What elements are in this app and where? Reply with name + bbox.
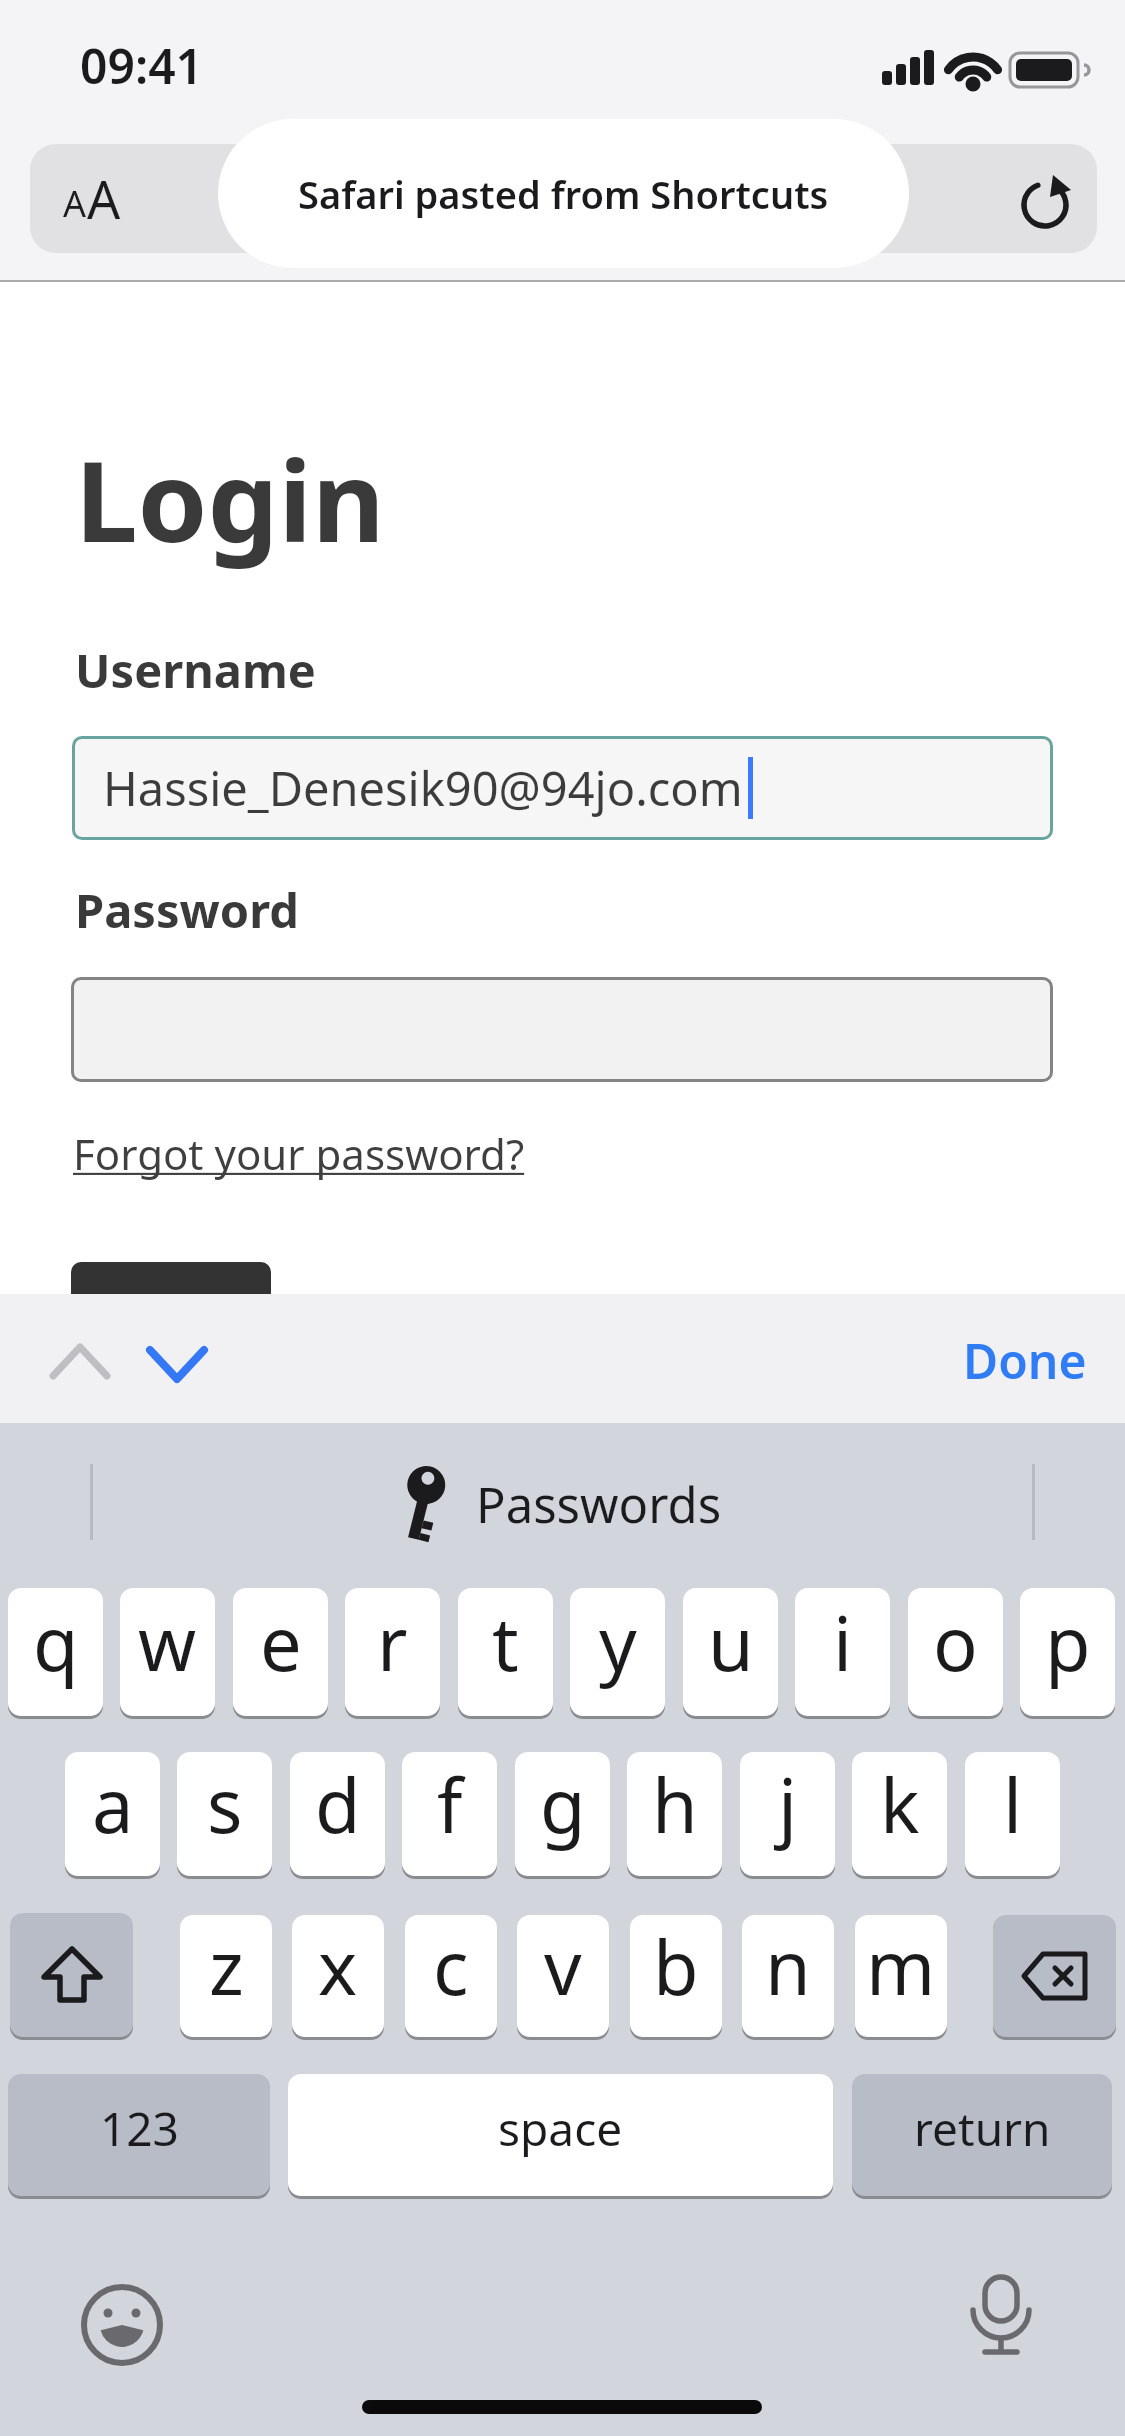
button[interactable]: h xyxy=(627,1752,722,1876)
staticText: Passwords xyxy=(476,1471,722,1538)
button[interactable]: m xyxy=(855,1915,947,2037)
staticText: j xyxy=(778,1754,798,1855)
staticText: Username xyxy=(75,638,316,702)
button[interactable]: n xyxy=(742,1915,834,2037)
staticText: u xyxy=(708,1592,754,1693)
button[interactable]: Forgot your password? xyxy=(73,1125,525,1182)
button[interactable]: s xyxy=(177,1752,272,1876)
button[interactable]: r xyxy=(345,1588,440,1716)
button[interactable]: o xyxy=(908,1588,1003,1716)
staticText: t xyxy=(492,1592,519,1693)
button[interactable]: Hassie_Denesik90@94jo.com xyxy=(72,736,1053,840)
staticText: w xyxy=(138,1592,197,1693)
staticText: Password xyxy=(75,878,299,942)
button[interactable]: e xyxy=(233,1588,328,1716)
button[interactable] xyxy=(966,2274,1036,2358)
button[interactable]: Safari pasted from Shortcuts xyxy=(218,119,909,268)
button[interactable]: d xyxy=(290,1752,385,1876)
staticText: f xyxy=(437,1754,463,1855)
staticText: z xyxy=(209,1916,244,2017)
button[interactable] xyxy=(10,1913,133,2037)
staticText: p xyxy=(1045,1592,1091,1693)
staticText: g xyxy=(540,1754,586,1855)
staticText: e xyxy=(260,1592,302,1693)
button[interactable] xyxy=(1019,179,1071,231)
button[interactable]: x xyxy=(292,1915,384,2037)
staticText: x xyxy=(318,1916,358,2017)
staticText: r xyxy=(377,1592,408,1693)
staticText: k xyxy=(880,1754,920,1855)
staticText: 123 xyxy=(100,2097,179,2160)
staticText: return xyxy=(914,2097,1051,2160)
button[interactable] xyxy=(993,1915,1116,2037)
button[interactable] xyxy=(82,2285,162,2365)
staticText: n xyxy=(765,1916,811,2017)
staticText: v xyxy=(544,1916,582,2017)
button[interactable]: y xyxy=(570,1588,665,1716)
staticText: s xyxy=(207,1754,243,1855)
button[interactable]: c xyxy=(405,1915,497,2037)
staticText: space xyxy=(498,2097,623,2160)
button[interactable]: g xyxy=(515,1752,610,1876)
button[interactable]: p xyxy=(1020,1588,1115,1716)
staticText: Safari pasted from Shortcuts xyxy=(298,168,829,220)
button[interactable]: t xyxy=(458,1588,553,1716)
button[interactable]: q xyxy=(8,1588,103,1716)
button[interactable]: 123 xyxy=(8,2074,270,2196)
button[interactable]: return xyxy=(852,2074,1112,2196)
staticText: a xyxy=(92,1754,134,1855)
button[interactable] xyxy=(71,1262,271,1294)
button[interactable] xyxy=(147,1345,207,1385)
staticText: A xyxy=(87,163,121,234)
staticText: l xyxy=(1003,1754,1023,1855)
button[interactable]: a xyxy=(65,1752,160,1876)
button[interactable]: Passwords xyxy=(93,1423,1032,1585)
staticText: c xyxy=(433,1916,469,2017)
button[interactable] xyxy=(71,977,1053,1082)
staticText: i xyxy=(833,1592,853,1693)
button[interactable]: Done xyxy=(963,1328,1087,1393)
button[interactable]: j xyxy=(740,1752,835,1876)
staticText: y xyxy=(599,1592,637,1693)
button[interactable]: A xyxy=(32,144,152,253)
button[interactable]: b xyxy=(630,1915,722,2037)
staticText: o xyxy=(933,1592,978,1693)
staticText: Hassie_Denesik90@94jo.com xyxy=(103,756,743,820)
staticText: h xyxy=(652,1754,698,1855)
button[interactable]: l xyxy=(965,1752,1060,1876)
staticText: A xyxy=(63,179,87,228)
button[interactable] xyxy=(50,1342,110,1382)
staticText: Login xyxy=(75,422,385,575)
staticText: 09:41 xyxy=(80,33,204,98)
staticText: m xyxy=(866,1916,936,2017)
button[interactable]: k xyxy=(852,1752,947,1876)
staticText: q xyxy=(33,1592,79,1693)
button[interactable]: w xyxy=(120,1588,215,1716)
staticText: b xyxy=(653,1916,699,2017)
button[interactable]: v xyxy=(517,1915,609,2037)
staticText: d xyxy=(315,1754,361,1855)
button[interactable]: u xyxy=(683,1588,778,1716)
button[interactable]: f xyxy=(402,1752,497,1876)
button[interactable]: space xyxy=(288,2074,833,2196)
button[interactable]: z xyxy=(180,1915,272,2037)
button[interactable]: i xyxy=(795,1588,890,1716)
